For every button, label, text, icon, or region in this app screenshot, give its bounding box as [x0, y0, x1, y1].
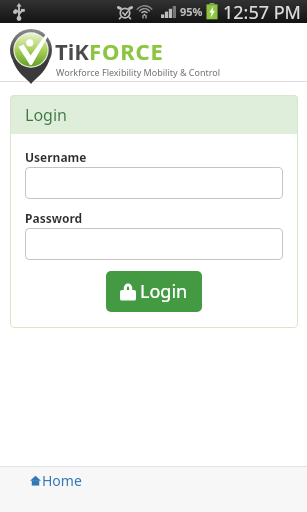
- staticText: Password: [25, 210, 83, 226]
- staticText: Username: [25, 149, 87, 165]
- staticText: 95%: [180, 4, 203, 19]
- staticText: Login: [25, 104, 67, 126]
- button[interactable]: Username: [25, 167, 283, 199]
- button[interactable]: Home: [26, 467, 88, 496]
- staticText: 12:57 PM: [223, 0, 301, 23]
- staticText: Login: [140, 279, 188, 304]
- staticText: Workforce Flexibility Mobility & Control: [56, 66, 221, 78]
- button[interactable]: Login: [106, 271, 202, 312]
- staticText: Home: [42, 471, 82, 490]
- staticText: TiK: [55, 36, 89, 66]
- staticText: FORCE: [89, 36, 164, 66]
- button[interactable]: Password: [25, 228, 283, 260]
